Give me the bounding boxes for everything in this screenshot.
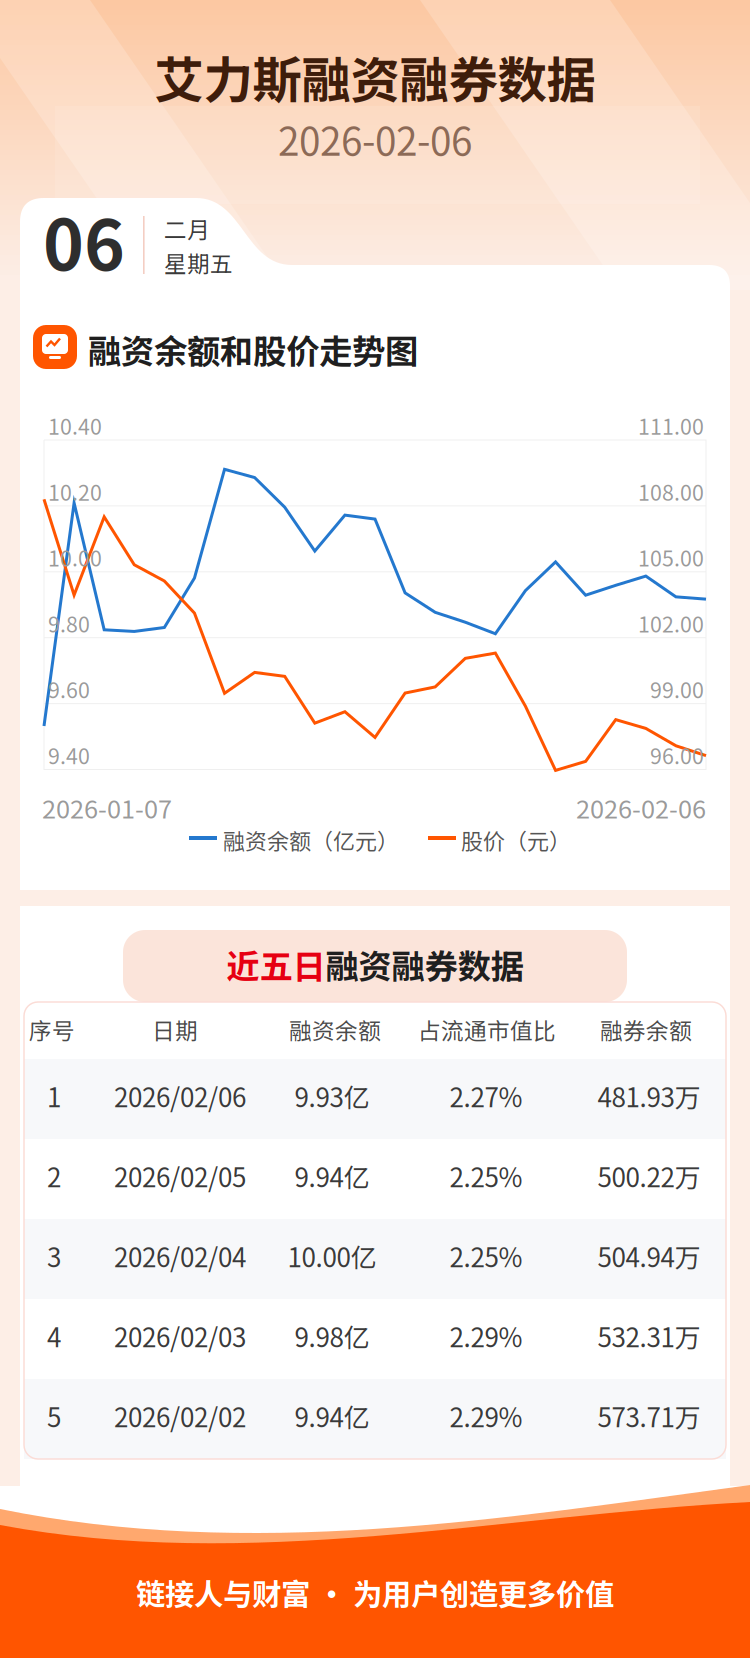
staticText: 10.40 bbox=[48, 410, 102, 441]
staticText: 9.94亿 bbox=[294, 1397, 369, 1435]
staticText: 2026/02/06 bbox=[114, 1077, 246, 1115]
staticText: 99.00 bbox=[650, 674, 704, 704]
staticText: 9.80 bbox=[48, 608, 90, 639]
staticText: 108.00 bbox=[638, 476, 704, 507]
staticText: 2026/02/03 bbox=[114, 1317, 246, 1355]
staticText: 2.29% bbox=[449, 1317, 522, 1355]
staticText: 融资余额（亿元） bbox=[223, 824, 399, 856]
staticText: 2026/02/04 bbox=[114, 1237, 246, 1275]
staticText: 504.94万 bbox=[597, 1237, 700, 1275]
staticText: 9.94亿 bbox=[294, 1157, 369, 1195]
staticText: 占流通市值比 bbox=[418, 1013, 556, 1046]
staticText: 4 bbox=[47, 1317, 61, 1355]
staticText: 2 bbox=[47, 1157, 61, 1195]
staticText: 10.00亿 bbox=[287, 1237, 376, 1275]
staticText: 1 bbox=[47, 1077, 61, 1115]
staticText: 9.93亿 bbox=[294, 1077, 369, 1115]
staticText: 序号 bbox=[29, 1013, 75, 1046]
staticText: 2026/02/02 bbox=[114, 1397, 246, 1435]
staticText: 2.25% bbox=[449, 1157, 522, 1195]
staticText: 5 bbox=[47, 1397, 61, 1435]
staticText: 500.22万 bbox=[597, 1157, 700, 1195]
staticText: 532.31万 bbox=[597, 1317, 700, 1355]
staticText: 102.00 bbox=[638, 608, 704, 639]
staticText: 二月 bbox=[164, 212, 210, 245]
staticText: 链接人与财富 · 为用户创造更多价值 bbox=[136, 1571, 614, 1613]
staticText: 10.20 bbox=[48, 476, 102, 507]
staticText: 日期 bbox=[152, 1013, 198, 1046]
staticText: 2.29% bbox=[449, 1397, 522, 1435]
staticText: 9.40 bbox=[48, 739, 90, 770]
staticText: 近五日 bbox=[226, 940, 325, 988]
staticText: 3 bbox=[47, 1237, 61, 1275]
staticText: 股价（元） bbox=[461, 824, 571, 856]
staticText: 9.60 bbox=[48, 674, 90, 704]
staticText: 2026/02/05 bbox=[114, 1157, 246, 1195]
staticText: 10.00 bbox=[48, 542, 102, 573]
staticText: 2026-02-06 bbox=[278, 111, 472, 167]
staticText: 2.25% bbox=[449, 1237, 522, 1275]
staticText: 105.00 bbox=[638, 542, 704, 573]
staticText: 481.93万 bbox=[597, 1077, 700, 1115]
staticText: 111.00 bbox=[638, 410, 704, 441]
staticText: 星期五 bbox=[164, 246, 233, 279]
staticText: 融资余额 bbox=[289, 1013, 381, 1046]
staticText: 融资余额和股价走势图 bbox=[88, 325, 418, 373]
staticText: 融资融券数据 bbox=[325, 940, 523, 988]
staticText: 06 bbox=[43, 190, 125, 290]
staticText: 2.27% bbox=[449, 1077, 522, 1115]
staticText: 9.98亿 bbox=[294, 1317, 369, 1355]
staticText: 96.00 bbox=[650, 739, 704, 770]
staticText: 艾力斯融资融券数据 bbox=[154, 41, 595, 112]
staticText: 573.71万 bbox=[597, 1397, 700, 1435]
staticText: 融券余额 bbox=[600, 1013, 692, 1046]
staticText: 2026-02-06 bbox=[576, 789, 706, 826]
staticText: 2026-01-07 bbox=[42, 789, 172, 826]
